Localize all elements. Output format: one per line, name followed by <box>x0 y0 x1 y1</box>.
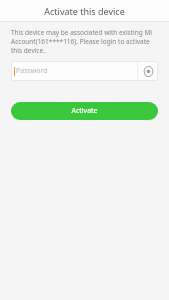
button[interactable]: Password <box>11 61 158 81</box>
staticText: Password <box>16 66 48 76</box>
staticText: This device may be associated with exist… <box>11 28 161 55</box>
button[interactable]: Show password <box>138 61 158 81</box>
staticText: Activate this device <box>44 5 125 17</box>
staticText: Activate <box>71 106 98 116</box>
button[interactable]: Activate <box>11 102 158 120</box>
